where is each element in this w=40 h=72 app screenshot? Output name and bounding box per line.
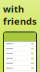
staticText: with friends — [3, 3, 37, 27]
